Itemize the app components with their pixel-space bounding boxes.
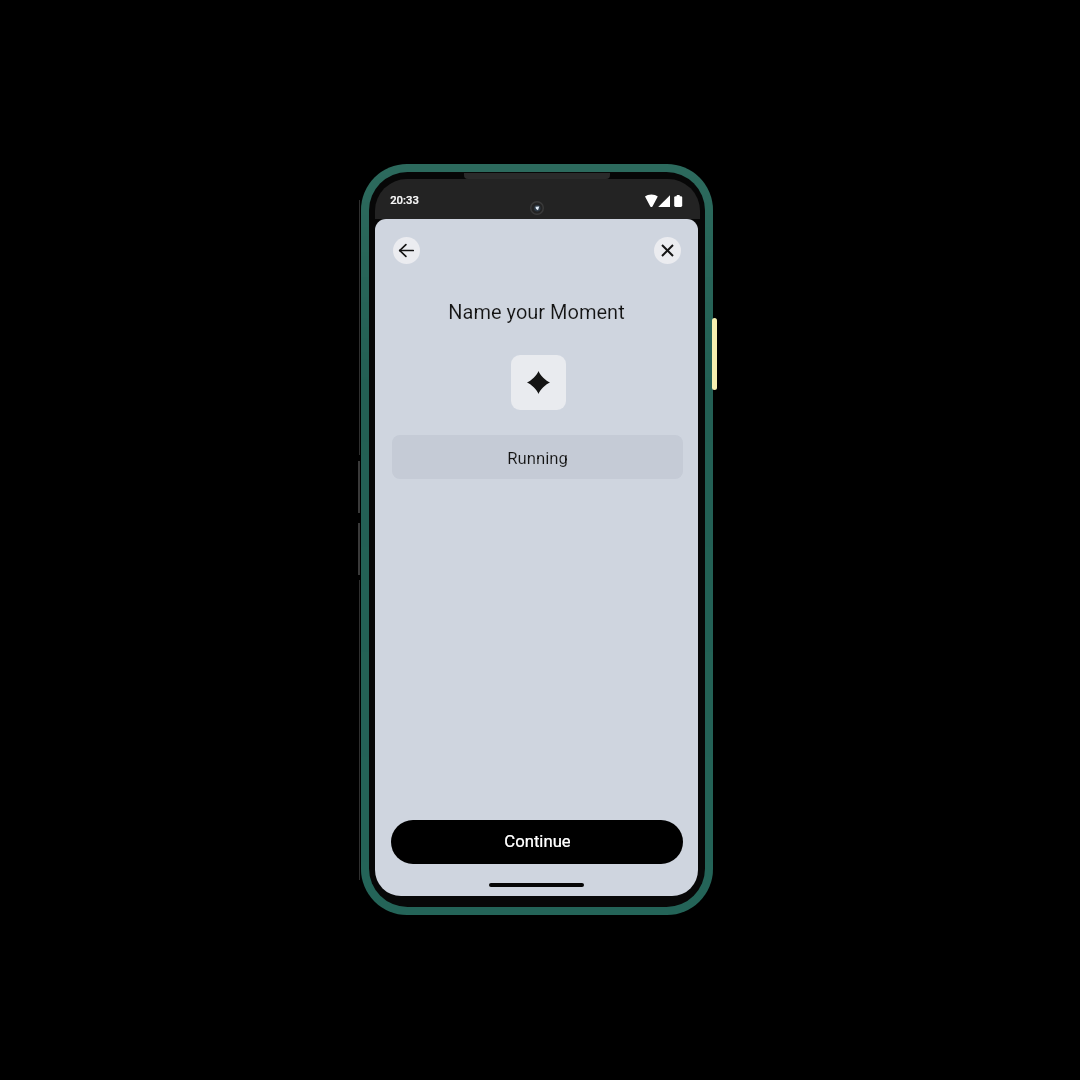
button[interactable]: Close [654, 237, 681, 264]
staticText: Continue [504, 832, 571, 852]
button[interactable]: Back [393, 237, 420, 264]
staticText: Name your Moment [448, 300, 625, 323]
button[interactable]: Continue [391, 820, 683, 864]
button[interactable]: Generate name [511, 355, 566, 410]
button[interactable]: Running [392, 435, 683, 479]
staticText: 20:33 [390, 194, 419, 207]
staticText: Running [507, 449, 568, 469]
